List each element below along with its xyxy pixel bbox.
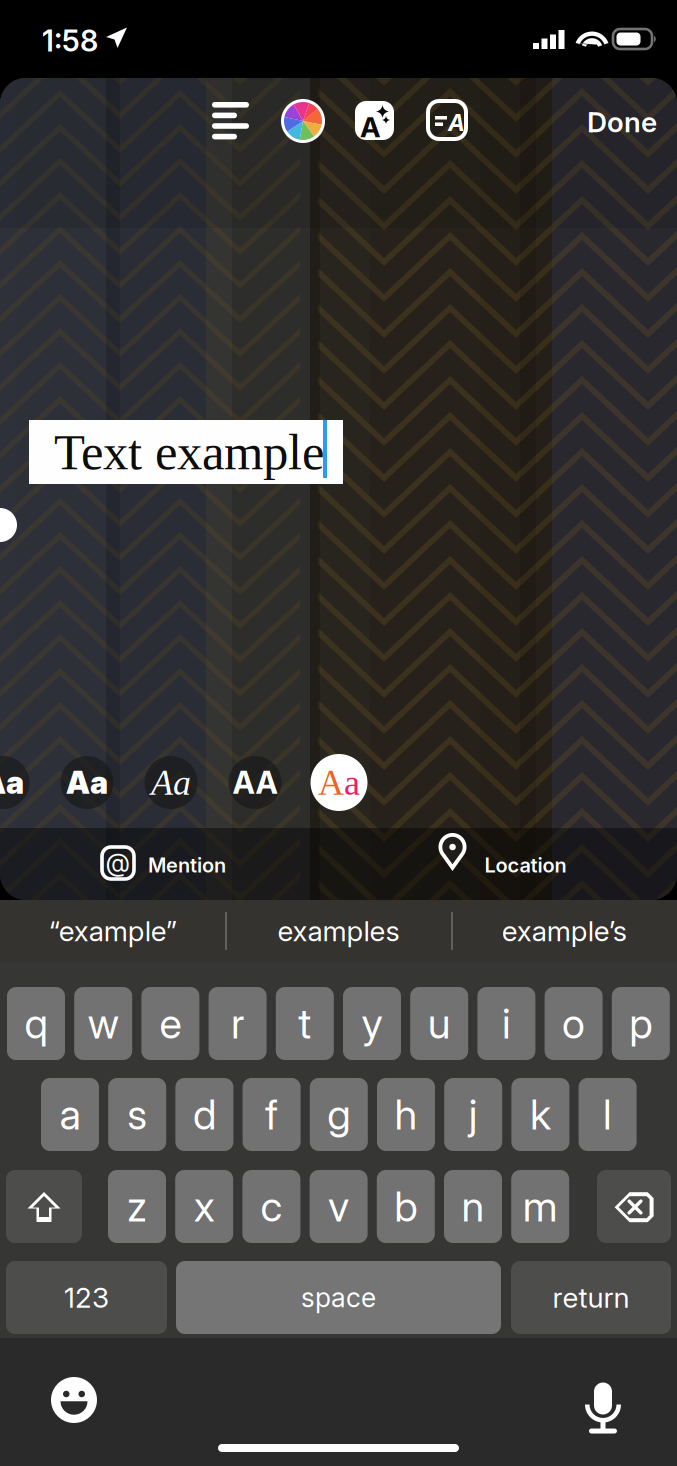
button[interactable]: t	[276, 987, 334, 1060]
staticText: q	[24, 998, 47, 1048]
button[interactable]: q	[7, 987, 65, 1060]
button[interactable]: b	[377, 1170, 435, 1243]
staticText: @	[105, 847, 130, 878]
button[interactable]: x	[175, 1170, 233, 1243]
button[interactable]: Dictation	[585, 1373, 621, 1424]
button[interactable]: Shift	[6, 1170, 82, 1243]
staticText: w	[88, 998, 119, 1048]
button[interactable]: Text effects	[428, 101, 466, 139]
button[interactable]: Aa	[142, 754, 199, 811]
staticText: 1:58	[42, 23, 98, 58]
staticText: e	[159, 998, 181, 1048]
staticText: A	[360, 110, 381, 144]
staticText: f	[265, 1089, 278, 1139]
staticText: x	[194, 1181, 215, 1231]
staticText: a	[59, 1089, 80, 1139]
staticText: r	[231, 998, 244, 1048]
button[interactable]: r	[209, 987, 267, 1060]
button[interactable]: z	[108, 1170, 166, 1243]
button[interactable]: c	[242, 1170, 300, 1243]
button[interactable]: h	[377, 1078, 435, 1151]
button[interactable]: example’s	[451, 900, 677, 962]
button[interactable]: “example”	[0, 900, 226, 962]
staticText: v	[328, 1181, 349, 1231]
button[interactable]: examples	[226, 900, 451, 962]
staticText: d	[193, 1089, 216, 1139]
staticText: Text example	[54, 424, 324, 480]
button[interactable]: o	[545, 987, 603, 1060]
staticText: t	[298, 998, 311, 1048]
staticText: u	[428, 998, 451, 1048]
button[interactable]: Text style	[355, 101, 394, 140]
button[interactable]: 123	[6, 1261, 167, 1334]
staticText: space	[301, 1281, 376, 1314]
button[interactable]: a	[41, 1078, 99, 1151]
staticText: p	[629, 998, 652, 1048]
staticText: Aa	[0, 764, 24, 801]
staticText: l	[603, 1089, 612, 1139]
staticText: b	[394, 1181, 417, 1231]
staticText: A	[318, 763, 344, 802]
button[interactable]: w	[74, 987, 132, 1060]
button[interactable]: AA	[226, 754, 283, 811]
button[interactable]: space	[176, 1261, 501, 1334]
button[interactable]: Text alignment	[212, 102, 249, 139]
staticText: Location	[484, 853, 566, 877]
button[interactable]: Classic font, selected	[310, 754, 367, 811]
staticText: c	[260, 1181, 282, 1231]
button[interactable]: j	[444, 1078, 502, 1151]
button[interactable]: y	[343, 987, 401, 1060]
button[interactable]: u	[410, 987, 468, 1060]
staticText: Aa	[151, 763, 191, 802]
staticText: k	[530, 1089, 551, 1139]
staticText: A	[448, 109, 465, 136]
staticText: example’s	[502, 914, 627, 948]
button[interactable]: m	[511, 1170, 569, 1243]
button[interactable]: n	[444, 1170, 502, 1243]
button[interactable]: Text colour	[281, 99, 325, 143]
staticText: 123	[64, 1281, 109, 1314]
staticText: examples	[277, 914, 399, 948]
button[interactable]: d	[175, 1078, 233, 1151]
staticText: Done	[587, 105, 657, 139]
staticText: m	[523, 1181, 558, 1231]
button[interactable]: Emoji keyboard	[51, 1377, 97, 1423]
button[interactable]: k	[511, 1078, 569, 1151]
button[interactable]: s	[108, 1078, 166, 1151]
staticText: Aa	[66, 764, 108, 801]
button[interactable]: g	[310, 1078, 368, 1151]
staticText: i	[502, 998, 511, 1048]
button[interactable]: Text example	[29, 420, 343, 484]
button[interactable]: v	[310, 1170, 368, 1243]
staticText: j	[469, 1089, 478, 1139]
button[interactable]: Aa	[0, 754, 31, 811]
staticText: Mention	[148, 853, 226, 877]
staticText: h	[394, 1089, 417, 1139]
staticText: g	[327, 1089, 350, 1139]
button[interactable]: p	[612, 987, 670, 1060]
button[interactable]: @	[0, 828, 338, 900]
button[interactable]: Done	[567, 103, 657, 141]
staticText: “example”	[49, 914, 177, 948]
button[interactable]: return	[511, 1261, 671, 1334]
button[interactable]: l	[579, 1078, 637, 1151]
button[interactable]: Delete	[597, 1170, 671, 1243]
staticText: z	[127, 1181, 147, 1231]
button[interactable]: Aa	[58, 754, 115, 811]
button[interactable]: i	[477, 987, 535, 1060]
button[interactable]: e	[141, 987, 199, 1060]
staticText: return	[552, 1281, 629, 1314]
staticText: a	[344, 763, 360, 802]
staticText: o	[562, 998, 585, 1048]
staticText: n	[461, 1181, 484, 1231]
staticText: s	[127, 1089, 147, 1139]
button[interactable]: f	[243, 1078, 301, 1151]
button[interactable]: Location	[338, 828, 677, 900]
staticText: AA	[232, 764, 277, 801]
staticText: y	[361, 998, 382, 1048]
